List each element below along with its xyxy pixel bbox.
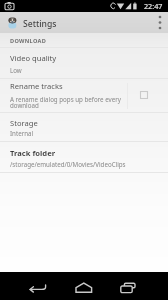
staticText: Rename tracks bbox=[10, 81, 63, 91]
staticText: Settings bbox=[23, 18, 57, 30]
button[interactable]: Rename tracks bbox=[0, 79, 168, 112]
staticText: A rename dialog pops up before every dow… bbox=[10, 95, 122, 110]
staticText: Low bbox=[10, 66, 22, 74]
staticText: 22:47 bbox=[144, 1, 163, 11]
button[interactable]: Track folder bbox=[0, 142, 168, 172]
staticText: /storage/emulated/0/Movies/VideoClips bbox=[10, 160, 126, 168]
button[interactable]: Video quality bbox=[0, 48, 168, 78]
staticText: DOWNLOAD bbox=[10, 37, 47, 45]
button[interactable]: Recent apps bbox=[118, 281, 139, 294]
staticText: Track folder bbox=[10, 148, 56, 158]
button[interactable]: Storage bbox=[0, 113, 168, 141]
button[interactable]: Home bbox=[74, 281, 95, 294]
button[interactable]: More options bbox=[152, 12, 168, 33]
staticText: Storage bbox=[10, 118, 38, 128]
button[interactable]: Back bbox=[27, 281, 48, 294]
staticText: Video quality bbox=[10, 53, 57, 63]
staticText: Internal bbox=[10, 129, 34, 137]
